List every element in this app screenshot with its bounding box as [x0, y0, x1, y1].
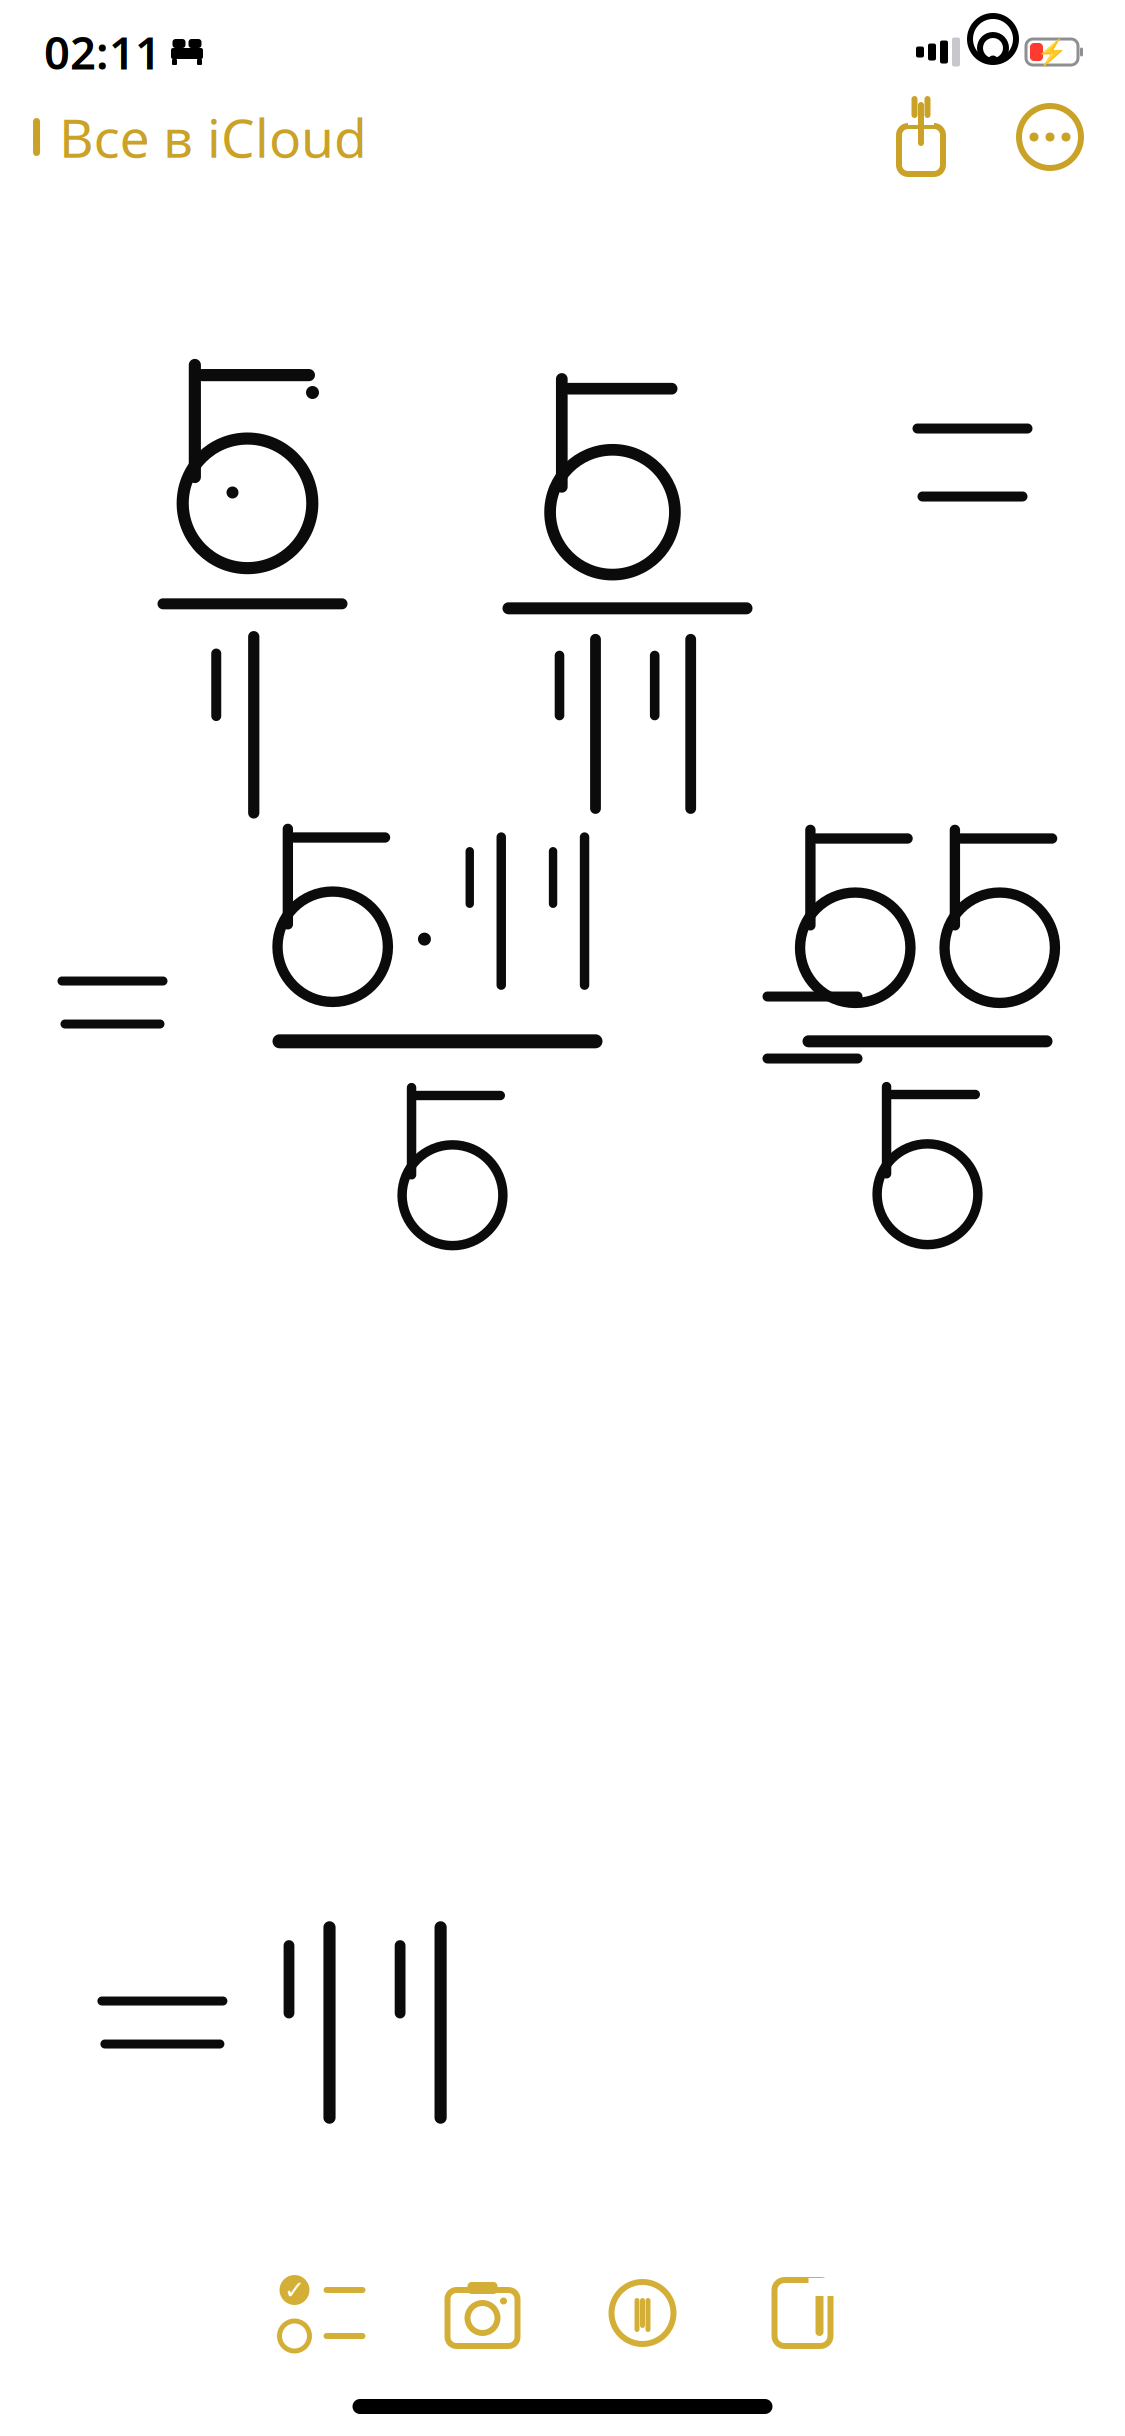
- button[interactable]: Разметка: [562, 2258, 722, 2368]
- staticText: 19 ноября 2023 г. в 02:11: [344, 145, 781, 192]
- staticText: 02:11: [44, 22, 161, 82]
- button[interactable]: Ещё: [1011, 104, 1089, 170]
- button[interactable]: Новая заметка: [722, 2258, 882, 2368]
- button[interactable]: Камера: [402, 2258, 562, 2368]
- button[interactable]: Контрольный список: [242, 2258, 402, 2368]
- staticText: ✓: [284, 2276, 305, 2304]
- staticText: Все в iCloud: [59, 102, 367, 172]
- staticText: ⚡: [1036, 37, 1068, 66]
- button[interactable]: Поделиться: [883, 99, 959, 175]
- staticText: Предложенный заголовок: 11 Изменить: [161, 81, 963, 135]
- button[interactable]: Все в iCloud: [0, 92, 367, 182]
